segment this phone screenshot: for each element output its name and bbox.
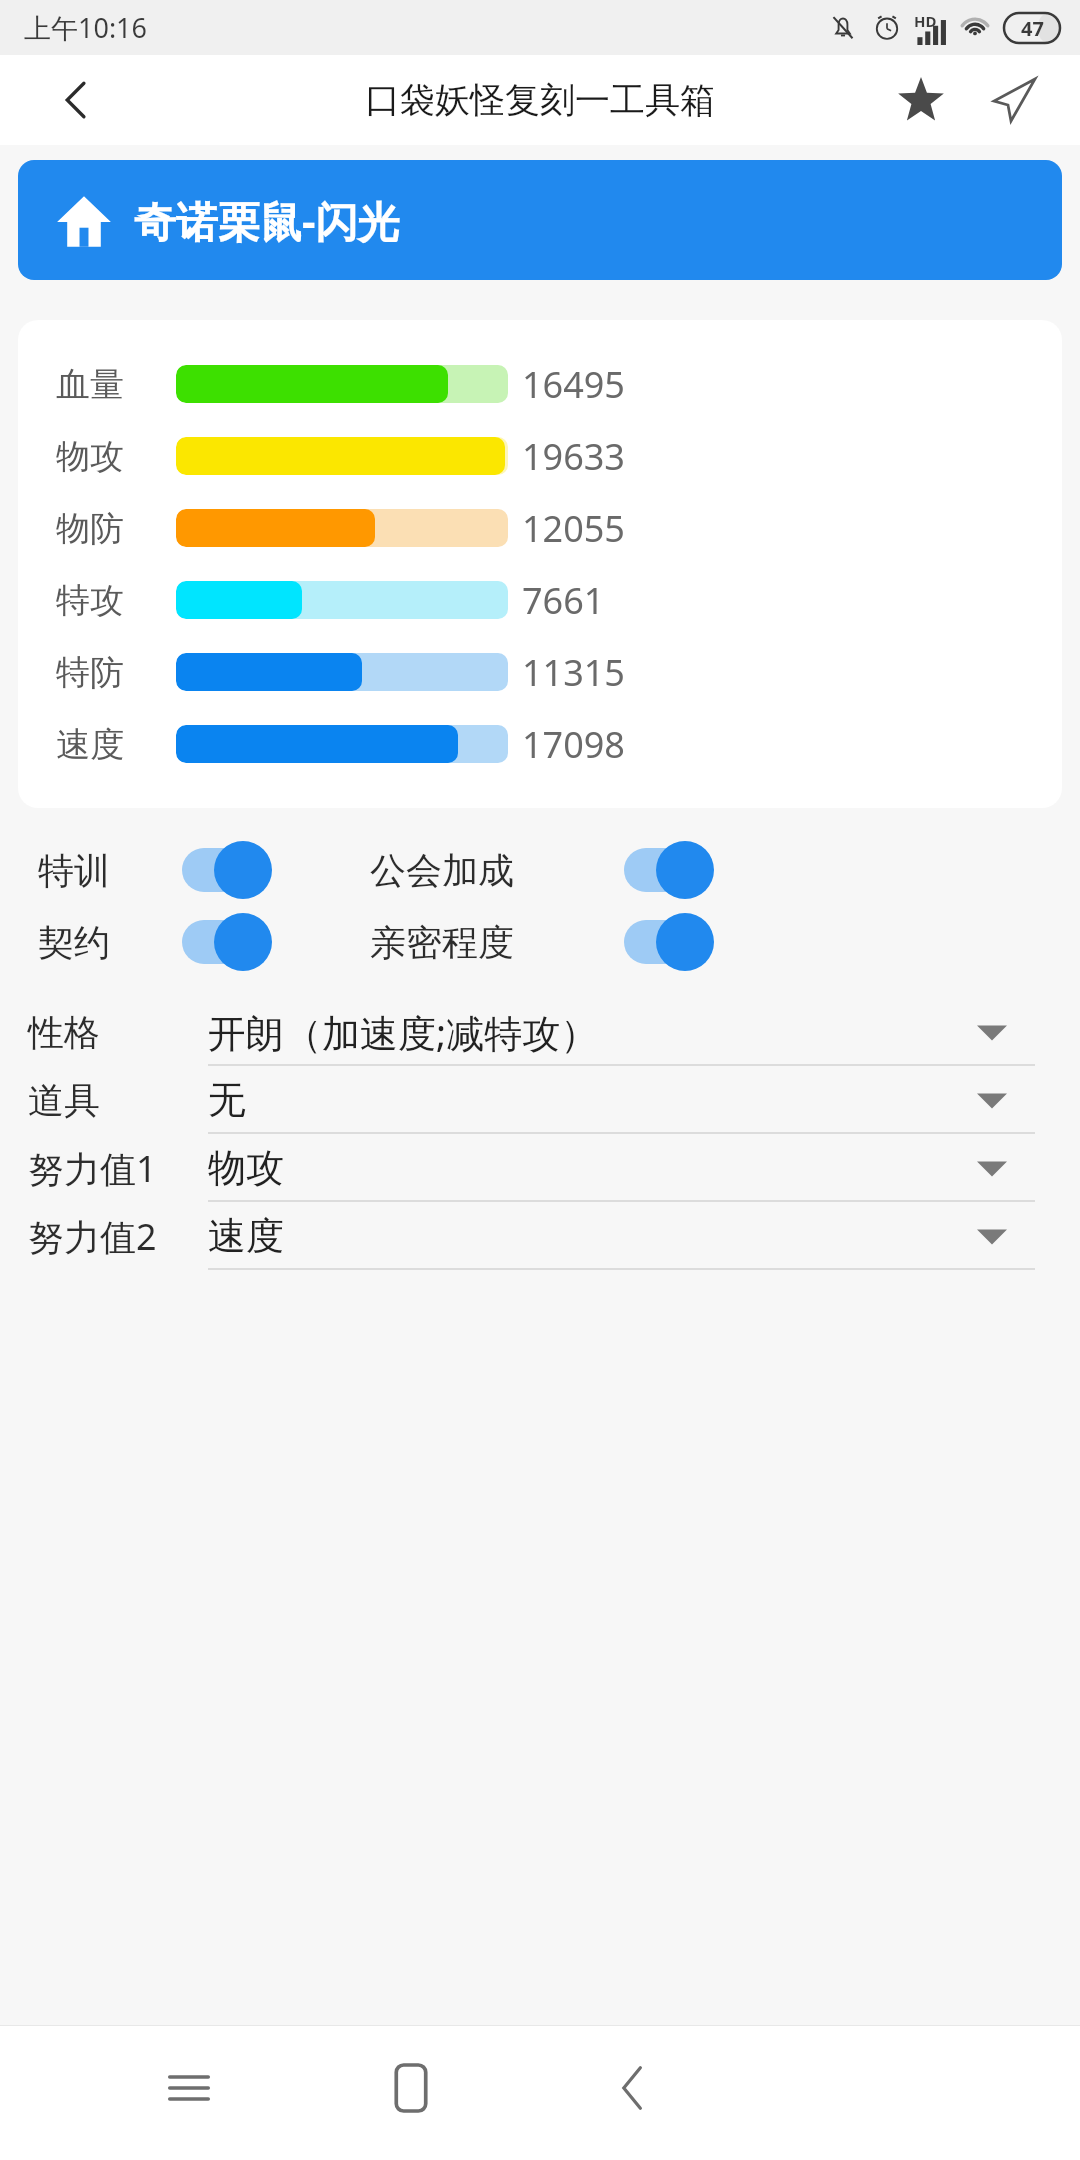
staticText: 17098 <box>522 720 625 769</box>
staticText: 物攻 <box>56 435 176 478</box>
staticText: 契约 <box>38 920 178 965</box>
staticText: 19633 <box>522 432 625 481</box>
button[interactable]: 奇诺栗鼠-闪光 <box>18 160 1062 280</box>
staticText: 努力值2 <box>28 1212 208 1261</box>
staticText: 47 <box>1021 15 1044 42</box>
staticText: HD <box>914 11 937 31</box>
button[interactable]: Share <box>980 67 1046 133</box>
staticText: 特训 <box>38 848 178 893</box>
button[interactable]: 公会加成 <box>370 841 720 899</box>
button[interactable]: 努力值1 <box>0 1134 1080 1202</box>
button[interactable]: 特训 <box>38 841 278 899</box>
button[interactable]: 契约 <box>38 913 278 971</box>
staticText: 无 <box>208 1076 246 1124</box>
staticText: 公会加成 <box>370 848 620 893</box>
button[interactable]: Back <box>44 68 108 132</box>
staticText: 奇诺栗鼠-闪光 <box>134 192 400 249</box>
staticText: 亲密程度 <box>370 920 620 965</box>
button[interactable]: Back <box>578 2033 688 2143</box>
staticText: 物攻 <box>208 1144 284 1192</box>
staticText: 道具 <box>28 1078 208 1123</box>
staticText: 特防 <box>56 651 176 694</box>
button[interactable]: Favorite <box>888 67 954 133</box>
staticText: 速度 <box>208 1212 284 1260</box>
button[interactable]: 性格 <box>0 998 1080 1066</box>
staticText: 16495 <box>522 360 625 409</box>
button[interactable]: Home <box>356 2033 466 2143</box>
staticText: 11315 <box>522 648 625 697</box>
staticText: 性格 <box>28 1010 208 1055</box>
staticText: 努力值1 <box>28 1144 208 1193</box>
button[interactable]: Menu <box>134 2033 244 2143</box>
button[interactable]: 道具 <box>0 1066 1080 1134</box>
staticText: 速度 <box>56 723 176 766</box>
staticText: 开朗（加速度;减特攻） <box>208 1006 599 1058</box>
staticText: 血量 <box>56 363 176 406</box>
staticText: 12055 <box>522 504 625 553</box>
staticText: 物防 <box>56 507 176 550</box>
button[interactable]: 亲密程度 <box>370 913 720 971</box>
staticText: 口袋妖怪复刻一工具箱 <box>365 78 715 122</box>
staticText: 特攻 <box>56 579 176 622</box>
button[interactable]: 努力值2 <box>0 1202 1080 1270</box>
staticText: 上午10:16 <box>24 9 148 46</box>
staticText: 7661 <box>522 576 605 625</box>
